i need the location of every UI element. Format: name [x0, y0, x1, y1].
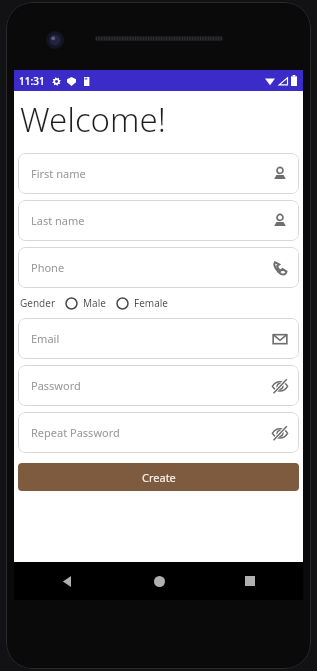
- staticText: First name: [31, 166, 86, 181]
- button[interactable]: Last name: [18, 200, 299, 241]
- staticText: Phone: [31, 260, 65, 275]
- staticText: Email: [31, 331, 60, 346]
- staticText: Repeat Password: [31, 425, 120, 440]
- button[interactable]: Password: [18, 365, 299, 406]
- other: Person: [271, 212, 289, 230]
- button[interactable]: Home: [146, 568, 172, 594]
- other: Email: [271, 330, 289, 348]
- staticText: 11:31: [19, 74, 45, 88]
- button[interactable]: Repeat Password: [18, 412, 299, 453]
- staticText: Create: [142, 470, 176, 485]
- other: Person: [271, 165, 289, 183]
- staticText: Gender: [20, 296, 56, 310]
- button[interactable]: Male: [65, 296, 106, 310]
- staticText: Female: [134, 296, 169, 310]
- button[interactable]: Back: [54, 568, 80, 594]
- button[interactable]: Phone: [18, 247, 299, 288]
- button[interactable]: First name: [18, 153, 299, 194]
- staticText: Welcome!: [20, 97, 166, 142]
- button[interactable]: Female: [116, 296, 169, 310]
- other: Toggle password visibility: [271, 377, 289, 395]
- button[interactable]: Recent apps: [237, 568, 263, 594]
- staticText: Last name: [31, 213, 85, 228]
- other: Toggle password visibility: [271, 424, 289, 442]
- button[interactable]: Create: [18, 463, 299, 491]
- staticText: Password: [31, 378, 81, 393]
- other: Phone: [271, 259, 289, 277]
- button[interactable]: Email: [18, 318, 299, 359]
- staticText: Male: [83, 296, 106, 310]
